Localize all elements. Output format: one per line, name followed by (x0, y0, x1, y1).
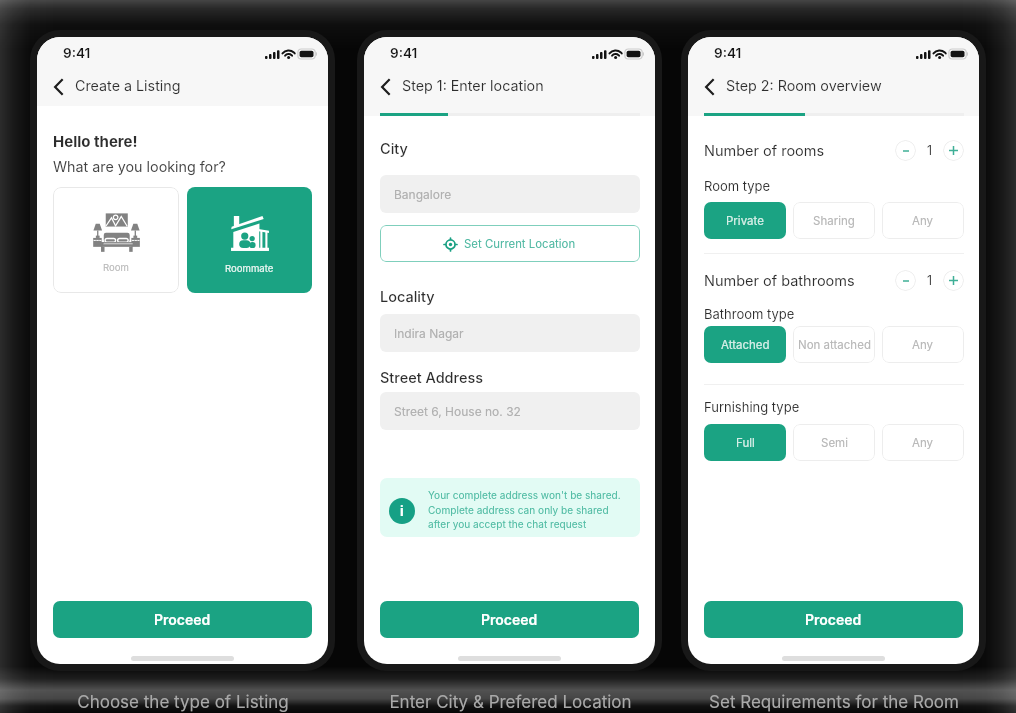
button[interactable]: Sharing (793, 202, 875, 239)
button[interactable]: Room (53, 187, 179, 293)
staticText: Roommate (225, 263, 274, 275)
staticText: Sharing (813, 214, 855, 228)
button[interactable]: Decrease (895, 140, 916, 161)
staticText: Street Address (380, 369, 484, 387)
button[interactable]: Full (704, 424, 786, 461)
button[interactable]: Back (47, 75, 69, 99)
button[interactable]: Back (698, 75, 720, 99)
staticText: Furnishing type (704, 399, 800, 415)
staticText: Number of rooms (704, 142, 825, 160)
staticText: Your complete address won't be shared. C… (428, 489, 621, 530)
staticText: Step 2: Room overview (726, 77, 882, 94)
staticText: Street 6, House no. 32 (394, 404, 521, 419)
staticText: Proceed (481, 611, 538, 628)
button[interactable]: Back (374, 75, 396, 99)
button[interactable]: Proceed (380, 601, 639, 638)
staticText: 1 (927, 273, 933, 288)
button[interactable]: Indira Nagar (380, 314, 640, 352)
staticText: What are you looking for? (53, 158, 226, 175)
staticText: Bangalore (394, 187, 452, 202)
staticText: Proceed (154, 611, 211, 628)
button[interactable]: Non attached (793, 326, 875, 363)
button[interactable]: Any (882, 326, 964, 363)
staticText: Step 1: Enter location (402, 77, 544, 94)
staticText: Hello there! (53, 132, 138, 150)
staticText: 9:41 (63, 45, 91, 61)
button[interactable]: Increase (943, 270, 964, 291)
button[interactable]: Street 6, House no. 32 (380, 392, 640, 430)
staticText: Bathroom type (704, 306, 795, 322)
staticText: Full (736, 436, 755, 450)
staticText: Choose the type of Listing (77, 692, 289, 713)
button[interactable]: Attached (704, 326, 786, 363)
staticText: Indira Nagar (394, 326, 464, 341)
button[interactable]: Increase (943, 140, 964, 161)
staticText: Private (726, 214, 764, 228)
staticText: Semi (821, 436, 848, 450)
staticText: Set Current Location (464, 237, 576, 251)
button[interactable]: Proceed (704, 601, 963, 638)
button[interactable]: Semi (793, 424, 875, 461)
button[interactable]: Roommate (187, 187, 312, 293)
staticText: 9:41 (714, 45, 742, 61)
button[interactable]: Private (704, 202, 786, 239)
button[interactable]: Set Current Location (380, 225, 640, 262)
staticText: Enter City & Prefered Location (389, 692, 632, 713)
button[interactable]: Bangalore (380, 175, 640, 213)
staticText: Room (103, 262, 129, 274)
staticText: 1 (927, 143, 933, 158)
staticText: Attached (721, 338, 770, 352)
staticText: Number of bathrooms (704, 272, 855, 290)
staticText: Locality (380, 288, 435, 306)
staticText: i (400, 503, 404, 519)
staticText: 9:41 (390, 45, 418, 61)
button[interactable]: Any (882, 424, 964, 461)
staticText: Proceed (805, 611, 862, 628)
staticText: Any (912, 436, 934, 450)
button[interactable]: Proceed (53, 601, 312, 638)
staticText: Create a Listing (75, 77, 181, 94)
staticText: Set Requirements for the Room (709, 692, 959, 713)
button[interactable]: Decrease (895, 270, 916, 291)
button[interactable]: Any (882, 202, 964, 239)
staticText: Any (912, 214, 934, 228)
staticText: Room type (704, 178, 771, 194)
staticText: Any (912, 338, 934, 352)
staticText: City (380, 140, 408, 158)
staticText: Non attached (798, 338, 871, 352)
